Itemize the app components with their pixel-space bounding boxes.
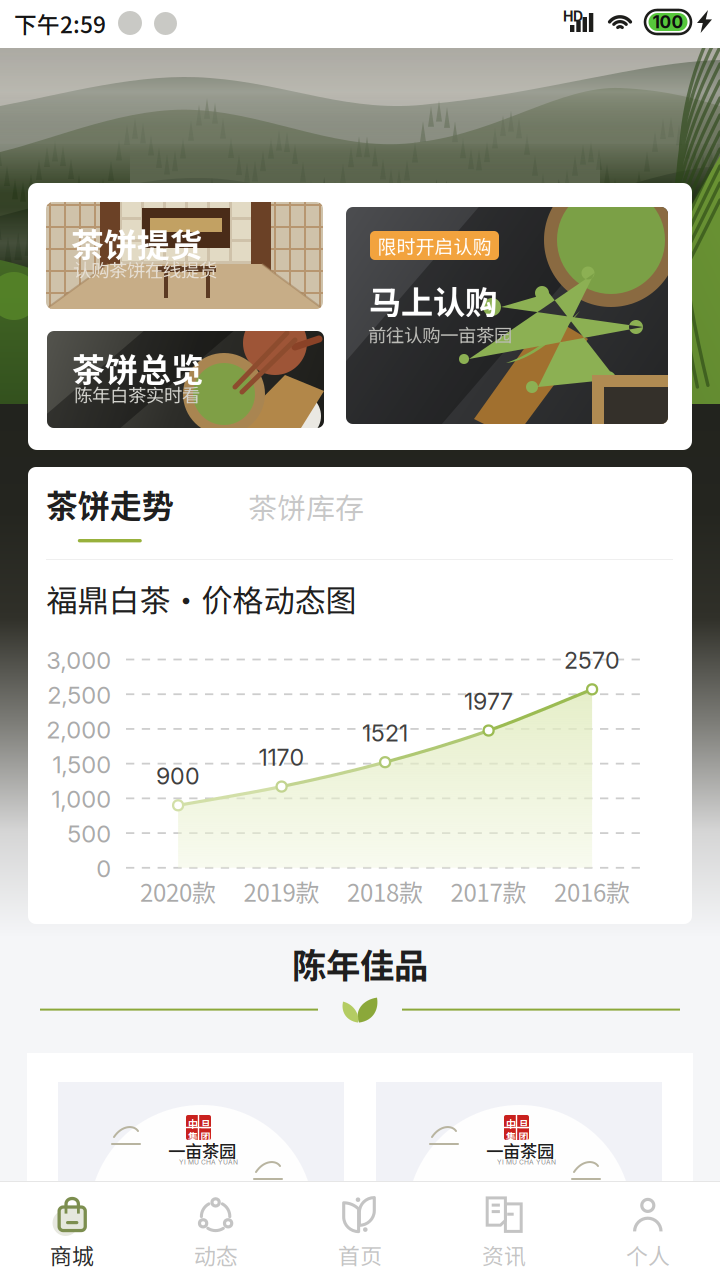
staticText: 2,500 — [47, 681, 111, 709]
staticText: 500 — [67, 820, 111, 848]
staticText: 中 — [506, 1116, 516, 1131]
staticText: 前往认购一亩茶园 — [368, 321, 512, 348]
button[interactable]: 商城 — [0, 1181, 144, 1280]
staticText: 动态 — [194, 1239, 238, 1271]
staticText: 团 — [201, 1129, 211, 1143]
staticText: 2016款 — [554, 874, 630, 909]
staticText: 2019款 — [244, 874, 320, 909]
staticText: YI MU CHA YUAN — [497, 1158, 556, 1166]
staticText: 认购茶饼在线提货 — [73, 256, 217, 283]
staticText: 集 — [506, 1129, 516, 1143]
button[interactable]: 首页 — [288, 1181, 432, 1280]
staticText: 1521 — [362, 719, 408, 747]
staticText: 个人 — [626, 1239, 670, 1271]
staticText: 1,000 — [51, 785, 111, 814]
staticText: 中 — [188, 1116, 198, 1131]
staticText: 首页 — [338, 1239, 382, 1271]
button[interactable]: 中 — [58, 1082, 344, 1196]
staticText: 茶饼总览 — [72, 344, 204, 391]
staticText: 2570 — [564, 646, 620, 674]
button[interactable]: 个人 — [576, 1181, 720, 1280]
staticText: 100 — [652, 11, 683, 32]
button[interactable]: 中 — [376, 1082, 662, 1196]
staticText: 2017款 — [451, 874, 527, 909]
staticText: 0 — [96, 854, 111, 883]
staticText: 茶饼提货 — [71, 219, 203, 266]
staticText: 2,000 — [46, 715, 111, 744]
staticText: 资讯 — [482, 1239, 526, 1271]
staticText: 下午2:59 — [14, 7, 106, 40]
staticText: YI MU CHA YUAN — [179, 1158, 238, 1166]
staticText: 2020款 — [140, 874, 216, 909]
staticText: 一亩茶园 — [486, 1138, 554, 1163]
staticText: 旦 — [201, 1116, 211, 1131]
button[interactable]: 茶饼提货 — [46, 202, 323, 309]
staticText: 一亩茶园 — [168, 1138, 236, 1163]
staticText: 3,000 — [46, 646, 111, 675]
staticText: 1977 — [464, 687, 513, 715]
button[interactable]: 茶饼总览 — [47, 331, 324, 428]
staticText: 团 — [519, 1129, 529, 1143]
staticText: 限时开启认购 — [377, 232, 491, 259]
staticText: 1,500 — [52, 750, 111, 779]
button[interactable]: 资讯 — [432, 1181, 576, 1280]
staticText: 1170 — [259, 743, 305, 771]
button[interactable]: 限时开启认购 — [346, 207, 668, 424]
staticText: 陈年佳品 — [292, 939, 428, 988]
staticText: 陈年白茶实时看 — [74, 381, 200, 408]
staticText: 旦 — [519, 1116, 529, 1131]
staticText: HD — [563, 8, 583, 25]
staticText: 2018款 — [347, 874, 423, 909]
staticText: 集 — [188, 1129, 198, 1143]
button[interactable]: 动态 — [144, 1181, 288, 1280]
button[interactable]: 茶饼走势 — [46, 481, 196, 551]
staticText: 茶饼库存 — [248, 485, 364, 527]
button[interactable]: 茶饼库存 — [248, 485, 378, 555]
staticText: 福鼎白茶・价格动态图 — [46, 576, 356, 621]
staticText: 商城 — [50, 1239, 94, 1271]
staticText: 茶饼走势 — [46, 481, 174, 527]
staticText: 900 — [156, 762, 200, 790]
staticText: 马上认购 — [369, 277, 497, 324]
